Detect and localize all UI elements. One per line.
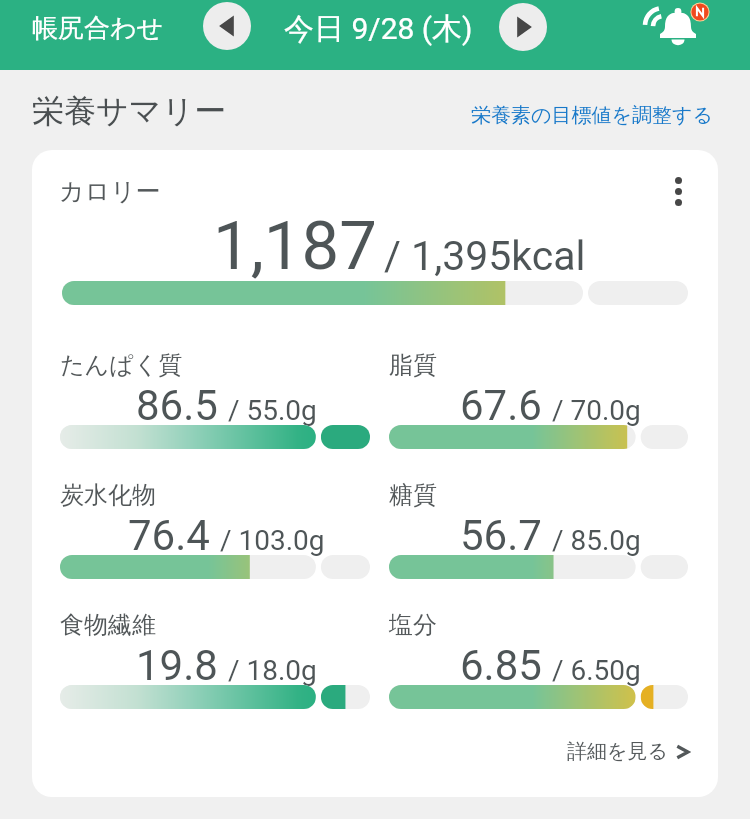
staticText: / 70.0g — [545, 394, 641, 427]
staticText: 19.8 — [136, 641, 218, 690]
staticText: 食物繊維 — [60, 610, 156, 640]
staticText: 栄養サマリー — [32, 91, 227, 131]
button[interactable]: 栄養素の目標値を調整する — [471, 103, 713, 128]
staticText: 67.6 — [460, 381, 542, 430]
staticText: / 103.0g — [213, 524, 325, 557]
staticText: 76.4 — [128, 511, 210, 560]
button[interactable]: Next day — [499, 3, 547, 51]
staticText: たんぱく質 — [60, 350, 183, 380]
staticText: 糖質 — [389, 480, 437, 510]
staticText: / 6.50g — [545, 654, 641, 687]
staticText: 詳細を見る — [567, 739, 668, 764]
staticText: 脂質 — [389, 350, 437, 380]
staticText: 56.7 — [460, 511, 542, 560]
staticText: / 1,395kcal — [384, 232, 586, 280]
button[interactable]: Notifications — [636, 0, 712, 52]
staticText: 86.5 — [136, 381, 218, 430]
staticText: 6.85 — [460, 641, 542, 690]
staticText: / 18.0g — [221, 654, 317, 687]
staticText: 栄養素の目標値を調整する — [471, 103, 713, 128]
staticText: 塩分 — [389, 610, 437, 640]
staticText: 今日 9/28 (木) — [284, 10, 473, 48]
staticText: 帳尻合わせ — [32, 12, 164, 45]
button[interactable]: More options — [655, 168, 701, 214]
button[interactable]: 詳細を見る — [567, 739, 681, 764]
staticText: 1,187 — [213, 207, 377, 286]
staticText: 炭水化物 — [60, 480, 156, 510]
staticText: / 85.0g — [545, 524, 641, 557]
button[interactable]: Previous day — [203, 2, 251, 50]
staticText: / 55.0g — [221, 394, 317, 427]
staticText: カロリー — [59, 176, 161, 207]
